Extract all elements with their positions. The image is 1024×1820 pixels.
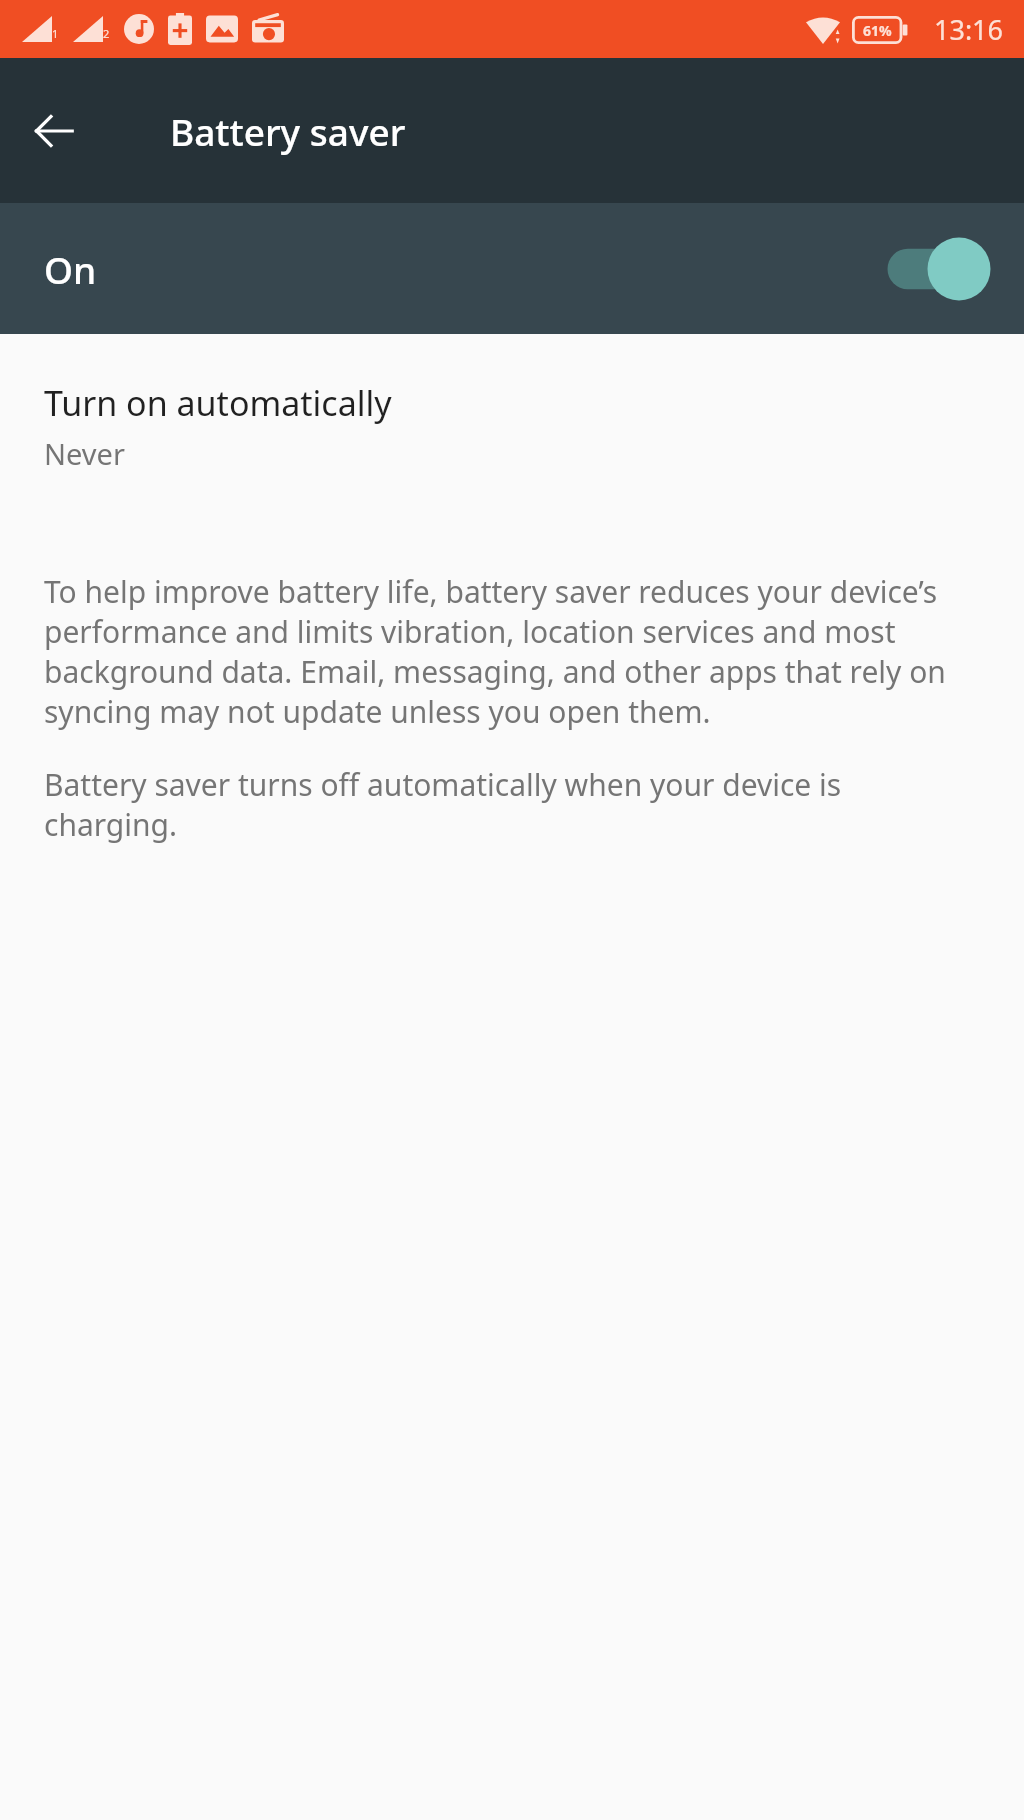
staticText: To help improve battery life, battery sa… bbox=[44, 571, 980, 732]
staticText: 2 bbox=[103, 26, 110, 41]
staticText: 13:16 bbox=[934, 11, 1004, 48]
staticText: Turn on automatically bbox=[44, 380, 392, 426]
staticText: Battery saver bbox=[170, 106, 406, 156]
button[interactable]: Battery saver toggle bbox=[882, 234, 992, 304]
button[interactable]: Turn on automatically bbox=[0, 334, 1024, 493]
button[interactable]: Back bbox=[18, 95, 90, 167]
staticText: 1 bbox=[52, 26, 59, 41]
button[interactable]: On bbox=[0, 203, 1024, 334]
staticText: 61% bbox=[863, 21, 892, 40]
staticText: On bbox=[44, 244, 97, 294]
staticText: Never bbox=[44, 434, 125, 473]
staticText: Battery saver turns off automatically wh… bbox=[44, 764, 980, 845]
